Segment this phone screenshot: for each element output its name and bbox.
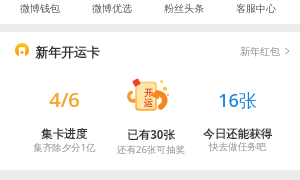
staticText: 今日还能获得 bbox=[203, 127, 272, 141]
staticText: 微博优选 bbox=[92, 2, 132, 15]
button[interactable]: 开 bbox=[107, 86, 194, 156]
staticText: 已有30张 bbox=[127, 127, 175, 143]
staticText: 粉丝头条 bbox=[164, 2, 204, 15]
staticText: 16张 bbox=[218, 88, 257, 113]
staticText: 4/6 bbox=[49, 86, 80, 112]
button[interactable]: 微博优选 bbox=[76, 0, 148, 24]
staticText: 快去做任务吧 bbox=[209, 141, 266, 153]
other: 开运卡 bbox=[128, 78, 170, 114]
button[interactable]: 微博钱包 bbox=[4, 0, 76, 24]
button[interactable]: 客服中心 bbox=[220, 0, 292, 24]
staticText: 集卡进度 bbox=[41, 127, 87, 141]
staticText: 集齐除夕分1亿 bbox=[33, 141, 96, 154]
button[interactable]: 16张 bbox=[194, 86, 281, 153]
staticText: 还有26张可抽奖 bbox=[117, 143, 185, 156]
other: 新年红包 bbox=[282, 46, 292, 56]
button[interactable]: 4/6 bbox=[21, 86, 107, 154]
staticText: 客服中心 bbox=[236, 2, 276, 15]
staticText: 运 bbox=[144, 97, 153, 108]
staticText: 新年开运卡 bbox=[35, 44, 100, 60]
button[interactable]: 粉丝头条 bbox=[148, 0, 220, 24]
staticText: 开 bbox=[144, 87, 153, 98]
staticText: 微博钱包 bbox=[20, 2, 60, 15]
staticText: 新年红包 bbox=[240, 45, 280, 58]
button[interactable]: 新年开运卡 bbox=[15, 38, 292, 62]
